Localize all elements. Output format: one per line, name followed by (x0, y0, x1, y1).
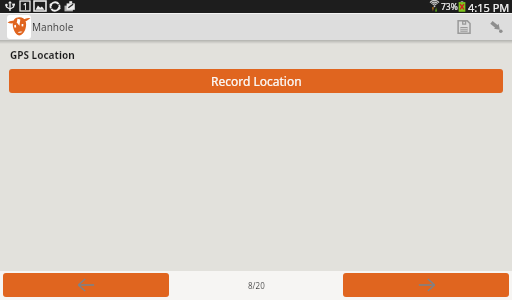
staticText: GPS Location (10, 48, 75, 62)
button[interactable]: Record Location (9, 69, 503, 93)
staticText: 73% (441, 1, 458, 13)
staticText: 8/20 (248, 280, 265, 291)
staticText: Manhole (32, 20, 74, 34)
staticText: 4:15 PM (468, 0, 510, 13)
staticText: 1 (23, 1, 28, 11)
button[interactable]: Next question (343, 273, 509, 297)
button[interactable]: Jump to question (480, 14, 512, 40)
button[interactable]: Save (448, 14, 480, 40)
button[interactable]: Previous question (3, 273, 169, 297)
staticText: Record Location (211, 73, 302, 89)
